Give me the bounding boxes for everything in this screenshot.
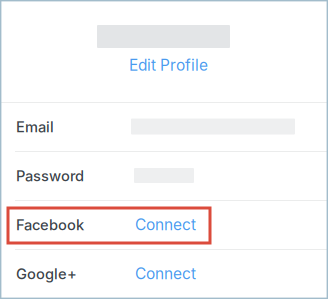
button[interactable]: Connect [135,262,215,284]
staticText: Connect [135,215,196,234]
staticText: Email [16,118,54,136]
staticText: Password [16,167,84,185]
staticText: Connect [135,264,196,283]
staticText: Google+ [16,265,77,283]
staticText: Facebook [16,216,84,234]
button[interactable]: Edit Profile [129,54,233,76]
button[interactable]: Connect [135,213,215,235]
staticText: Edit Profile [129,56,208,74]
